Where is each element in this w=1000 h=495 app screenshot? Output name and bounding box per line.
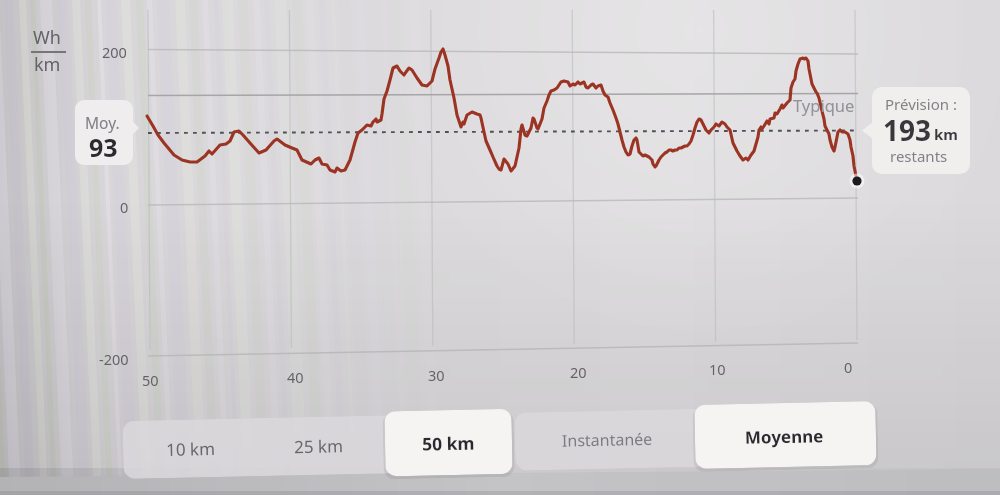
staticText: Wh bbox=[33, 25, 61, 50]
staticText: Typique bbox=[793, 94, 855, 116]
button[interactable]: 10 km bbox=[140, 422, 241, 474]
button[interactable] bbox=[384, 409, 513, 476]
staticText: 193 bbox=[883, 111, 932, 149]
staticText: 10 km bbox=[166, 437, 215, 461]
staticText: Instantanée bbox=[562, 428, 653, 452]
staticText: Moy. bbox=[85, 112, 120, 133]
staticText: 200 bbox=[102, 42, 127, 62]
staticText: 0 bbox=[120, 197, 129, 217]
staticText: 20 bbox=[570, 362, 587, 382]
button[interactable]: 25 km bbox=[267, 420, 368, 472]
staticText: 0 bbox=[844, 357, 853, 377]
staticText: 10 bbox=[709, 359, 726, 379]
staticText: 50 bbox=[142, 370, 159, 390]
staticText: 50 km bbox=[422, 430, 475, 456]
staticText: km bbox=[934, 124, 958, 144]
staticText: km bbox=[34, 52, 61, 77]
staticText: 25 km bbox=[294, 434, 343, 458]
staticText: restants bbox=[890, 146, 948, 166]
staticText: 93 bbox=[89, 130, 118, 164]
staticText: 30 bbox=[428, 365, 445, 385]
button[interactable] bbox=[694, 401, 877, 469]
staticText: 40 bbox=[287, 367, 304, 387]
staticText: Prévision : bbox=[885, 94, 957, 114]
staticText: -200 bbox=[99, 349, 129, 369]
button[interactable]: Instantanée bbox=[556, 414, 657, 466]
staticText: Moyenne bbox=[745, 424, 824, 449]
